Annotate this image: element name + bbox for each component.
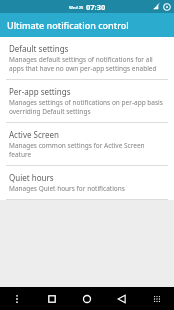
staticText: Manages default settings of notification… — [9, 55, 166, 73]
staticText: 07:30 — [86, 2, 106, 12]
staticText: Active Screen — [9, 129, 59, 140]
staticText: Wed 25 — [69, 5, 84, 10]
button[interactable]: Home — [69, 287, 104, 310]
button[interactable]: Recent apps — [34, 287, 69, 310]
button[interactable]: Per-app settings — [0, 80, 174, 122]
staticText: Manages settings of notifications on per… — [9, 98, 166, 116]
staticText: Default settings — [9, 43, 69, 54]
button[interactable]: Active Screen — [0, 123, 174, 165]
staticText: Manages common settings for Active Scree… — [9, 141, 166, 159]
button[interactable]: All apps — [139, 287, 174, 310]
button[interactable]: Quiet hours — [0, 166, 174, 199]
staticText: Quiet hours — [9, 172, 54, 183]
button[interactable]: More options — [0, 287, 34, 310]
staticText: Ultimate notification control — [7, 19, 129, 31]
button[interactable]: Default settings — [0, 37, 174, 79]
button[interactable]: Back — [104, 287, 139, 310]
staticText: Per-app settings — [9, 86, 71, 97]
staticText: Manages Quiet hours for notifications — [9, 184, 125, 193]
